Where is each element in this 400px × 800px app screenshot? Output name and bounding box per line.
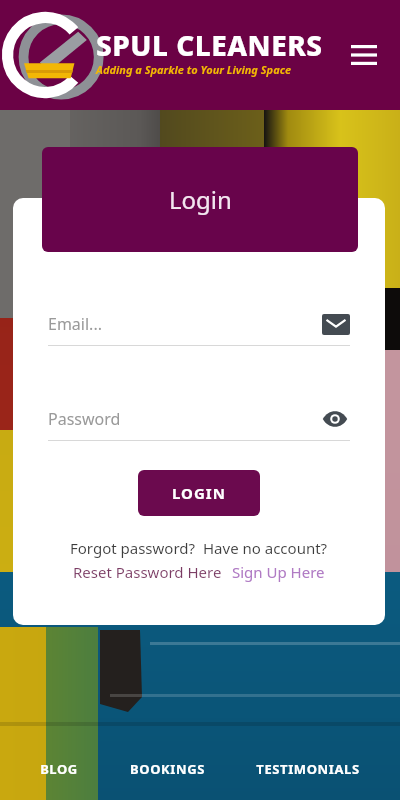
button[interactable]: TESTIMONIALS bbox=[230, 746, 386, 792]
staticText: Login bbox=[169, 183, 232, 216]
button[interactable]: LOGIN bbox=[138, 470, 260, 516]
staticText: LOGIN bbox=[172, 483, 226, 503]
staticText: BOOKINGS bbox=[130, 760, 205, 778]
staticText: Forgot password? bbox=[70, 538, 196, 558]
button[interactable]: Password bbox=[48, 398, 350, 440]
staticText: Password bbox=[48, 408, 320, 430]
staticText: Email... bbox=[48, 313, 322, 335]
button[interactable]: Email... bbox=[48, 303, 350, 345]
staticText: SPUL CLEANERS bbox=[96, 26, 323, 64]
staticText: Reset Password Here bbox=[73, 562, 222, 582]
button[interactable]: Show password bbox=[320, 404, 350, 434]
button[interactable]: Open menu bbox=[342, 33, 386, 77]
staticText: Have no account? bbox=[203, 538, 328, 558]
staticText: Adding a Sparkle to Your Living Space bbox=[96, 62, 292, 77]
button[interactable]: BOOKINGS bbox=[104, 746, 230, 792]
staticText: BLOG bbox=[40, 760, 78, 778]
staticText: TESTIMONIALS bbox=[256, 760, 360, 778]
button[interactable]: Sign Up Here bbox=[232, 562, 325, 582]
button[interactable]: BLOG bbox=[14, 746, 104, 792]
staticText: Sign Up Here bbox=[232, 562, 325, 582]
button[interactable]: Reset Password Here bbox=[73, 562, 222, 582]
